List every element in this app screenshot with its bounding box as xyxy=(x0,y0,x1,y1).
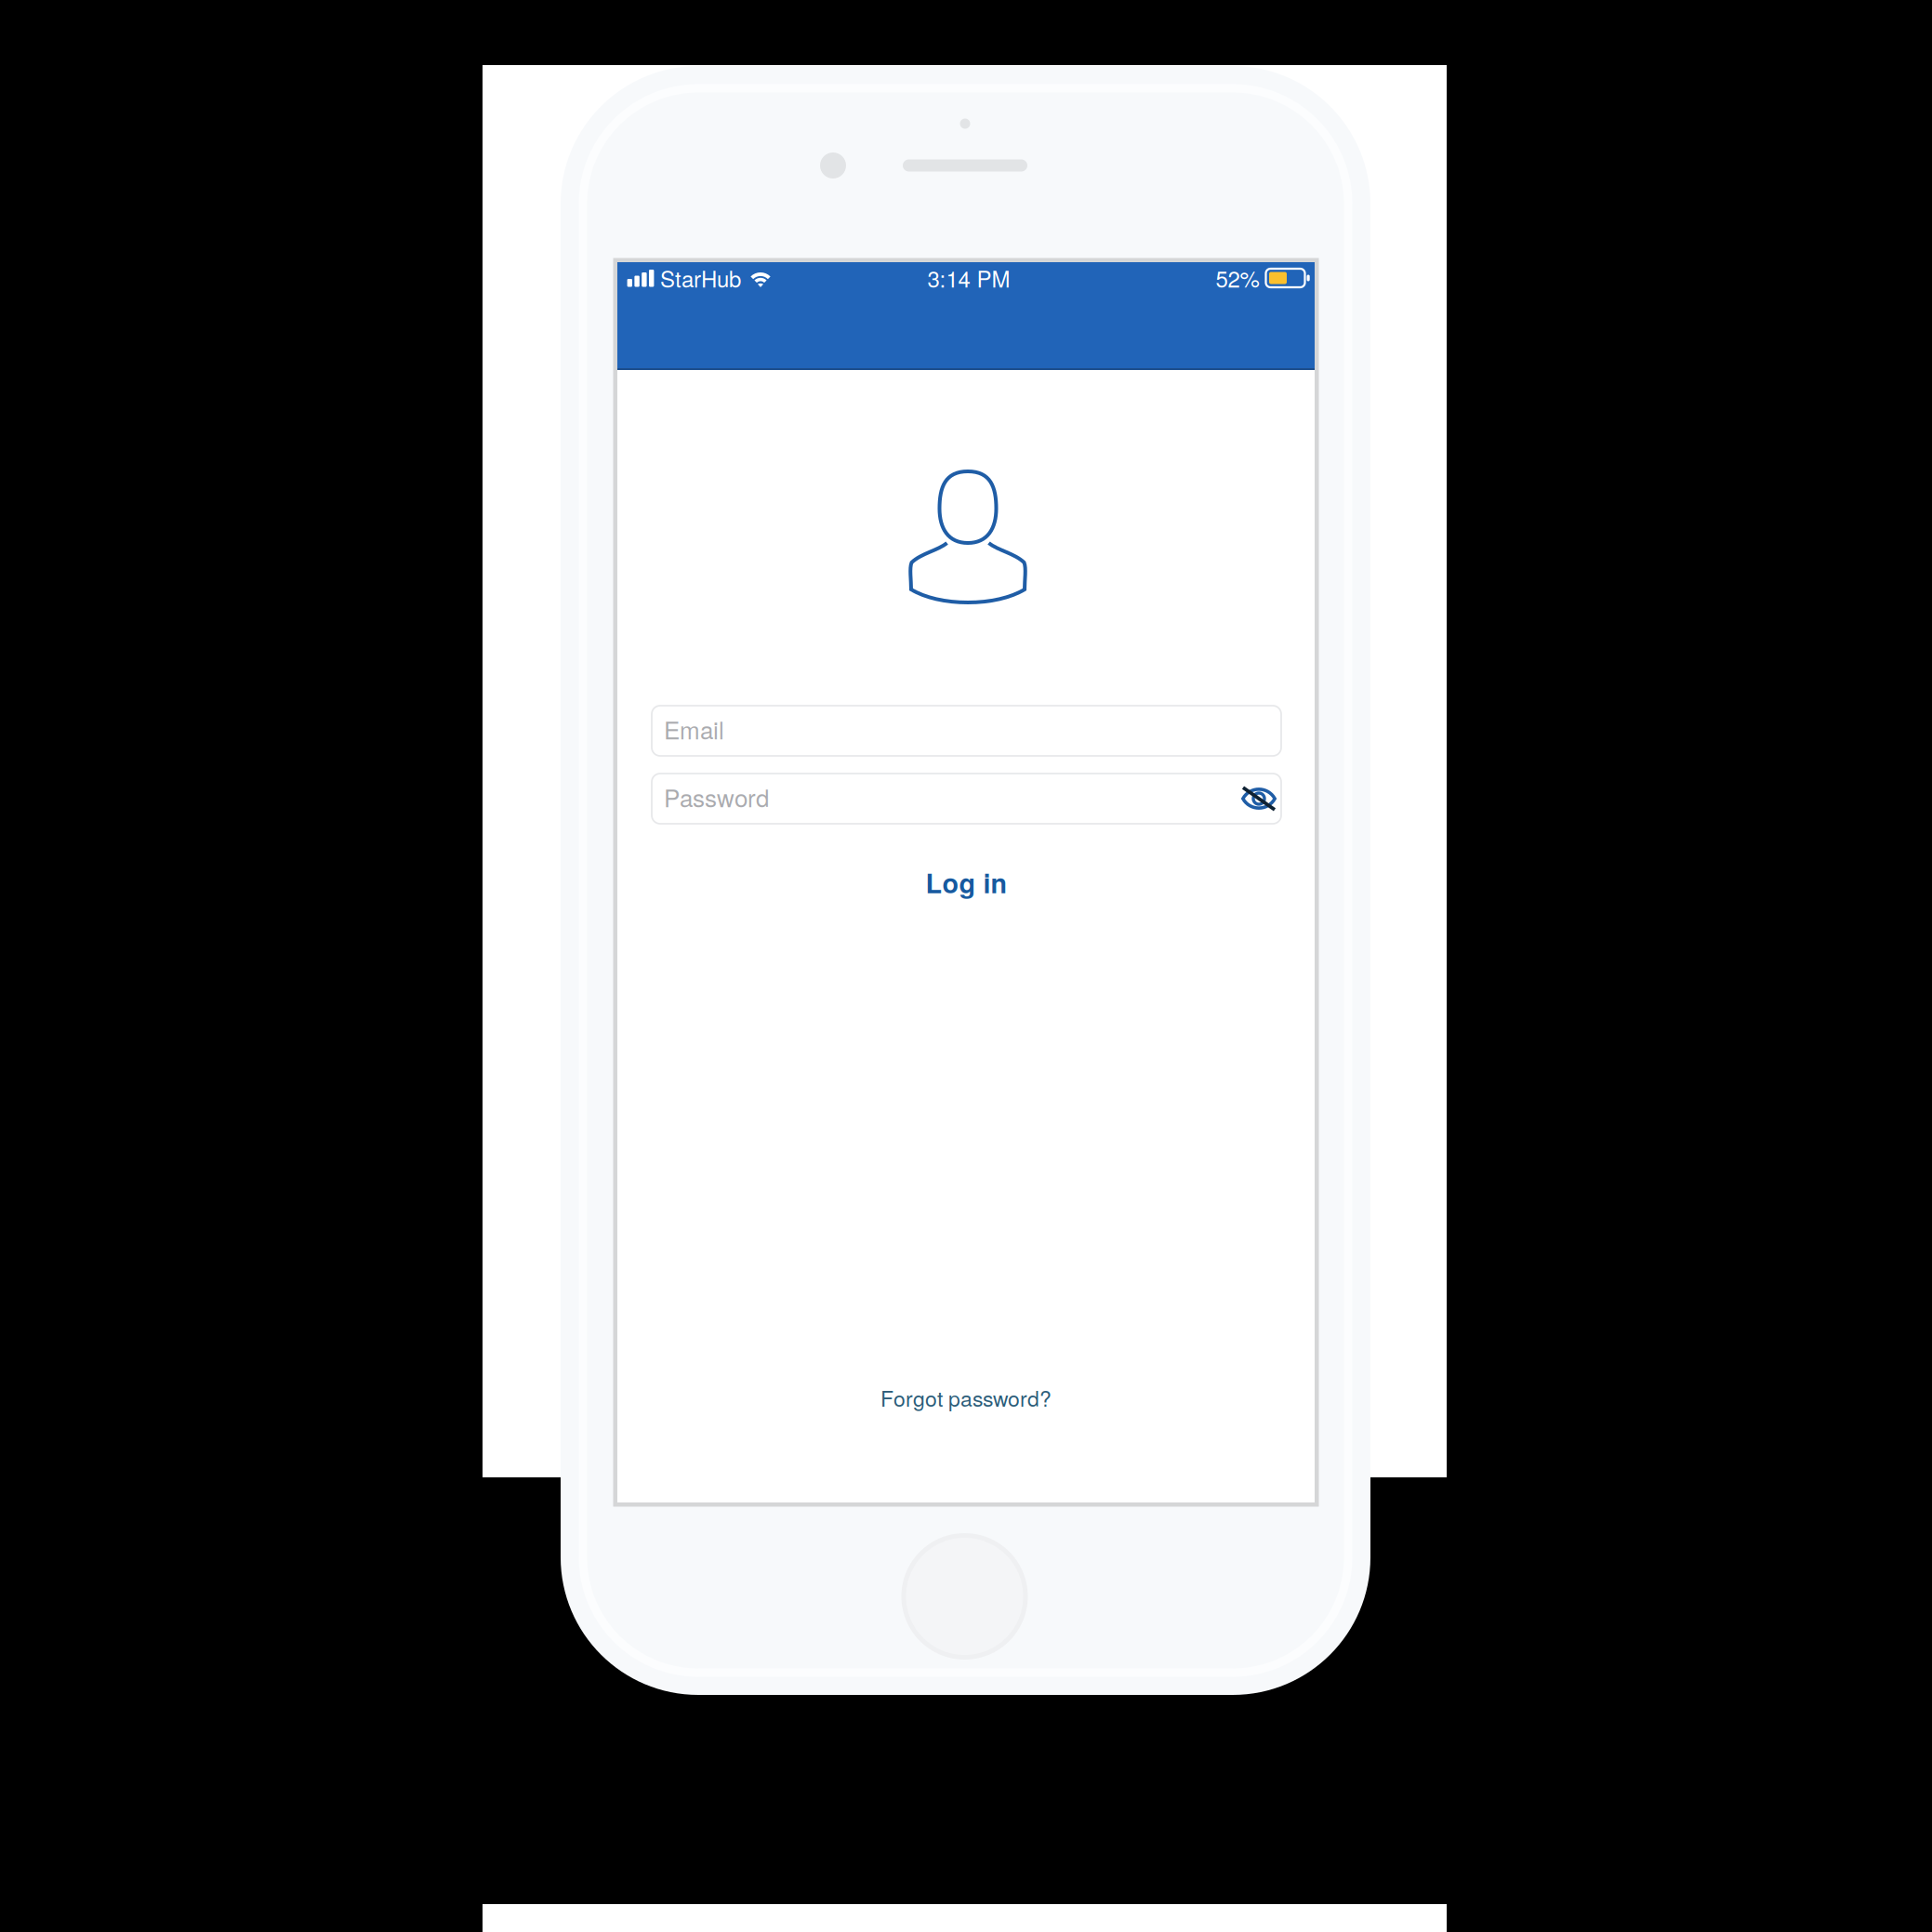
staticText: Log in xyxy=(926,863,1007,901)
button[interactable]: Password xyxy=(652,774,1281,824)
staticText: Password xyxy=(664,779,769,814)
button[interactable]: Show password xyxy=(1237,774,1281,824)
button[interactable]: Log in xyxy=(652,856,1281,908)
staticText: 52% xyxy=(1216,262,1259,294)
staticText: Forgot password? xyxy=(880,1382,1052,1413)
staticText: StarHub xyxy=(660,262,741,294)
button[interactable]: Email xyxy=(652,706,1281,756)
button[interactable]: Forgot password? xyxy=(813,1373,1119,1422)
staticText: 3:14 PM xyxy=(927,262,1010,294)
staticText: Email xyxy=(664,712,724,746)
